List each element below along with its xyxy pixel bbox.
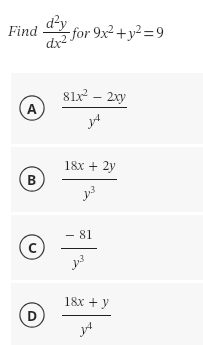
staticText: y4: [81, 321, 93, 337]
button[interactable]: A: [11, 73, 203, 144]
staticText: 18x + 2y: [64, 160, 116, 174]
staticText: y4: [89, 113, 101, 129]
button[interactable]: B: [11, 147, 203, 212]
staticText: Find: [8, 25, 38, 40]
staticText: B: [27, 170, 37, 189]
staticText: y3: [73, 254, 85, 270]
staticText: D: [27, 306, 38, 325]
staticText: 18x + y: [64, 296, 109, 310]
staticText: A: [27, 99, 37, 118]
staticText: − 81: [65, 229, 93, 243]
staticText: C: [28, 238, 37, 257]
staticText: y3: [84, 185, 96, 201]
staticText: dx2: [46, 34, 67, 51]
button[interactable]: D: [11, 283, 203, 345]
staticText: d2y: [46, 14, 67, 31]
staticText: 81x2 − 2xy: [63, 88, 126, 104]
button[interactable]: C: [11, 215, 203, 280]
staticText: for 9x2 + y2 = 9: [72, 24, 164, 42]
